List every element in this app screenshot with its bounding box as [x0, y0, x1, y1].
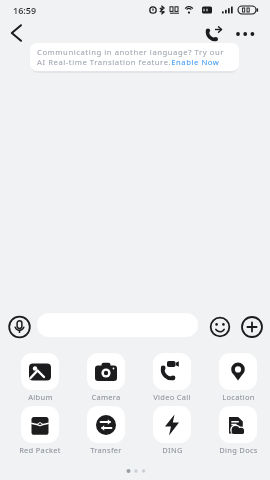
staticText: 16:59 — [13, 4, 37, 16]
button[interactable] — [8, 315, 31, 339]
staticText: Red Packet — [19, 445, 61, 455]
button[interactable] — [202, 22, 228, 46]
button[interactable]: Transfer — [82, 406, 130, 456]
button[interactable]: DING — [148, 406, 196, 456]
staticText: Transfer — [90, 445, 122, 455]
staticText: Location — [222, 392, 255, 402]
button[interactable]: Red Packet — [16, 406, 64, 456]
staticText: AI Real-time Translation feature.Enable … — [37, 57, 220, 67]
button[interactable]: Ding Docs — [214, 406, 262, 456]
staticText: Album — [28, 392, 53, 402]
staticText: Communicating in another language? Try o… — [37, 47, 224, 57]
button[interactable] — [4, 22, 36, 46]
button[interactable]: Communicating in another language? Try o… — [30, 43, 239, 71]
staticText: Ding Docs — [219, 445, 258, 455]
button[interactable]: Location — [214, 353, 262, 403]
button[interactable]: Camera — [82, 353, 130, 403]
button[interactable] — [241, 315, 263, 339]
staticText: DING — [162, 445, 183, 455]
staticText: Camera — [91, 392, 121, 402]
button[interactable] — [209, 315, 231, 339]
staticText: Video Call — [153, 392, 191, 402]
button[interactable] — [232, 22, 260, 46]
button[interactable]: Album — [16, 353, 64, 403]
button[interactable]: Video Call — [148, 353, 196, 403]
